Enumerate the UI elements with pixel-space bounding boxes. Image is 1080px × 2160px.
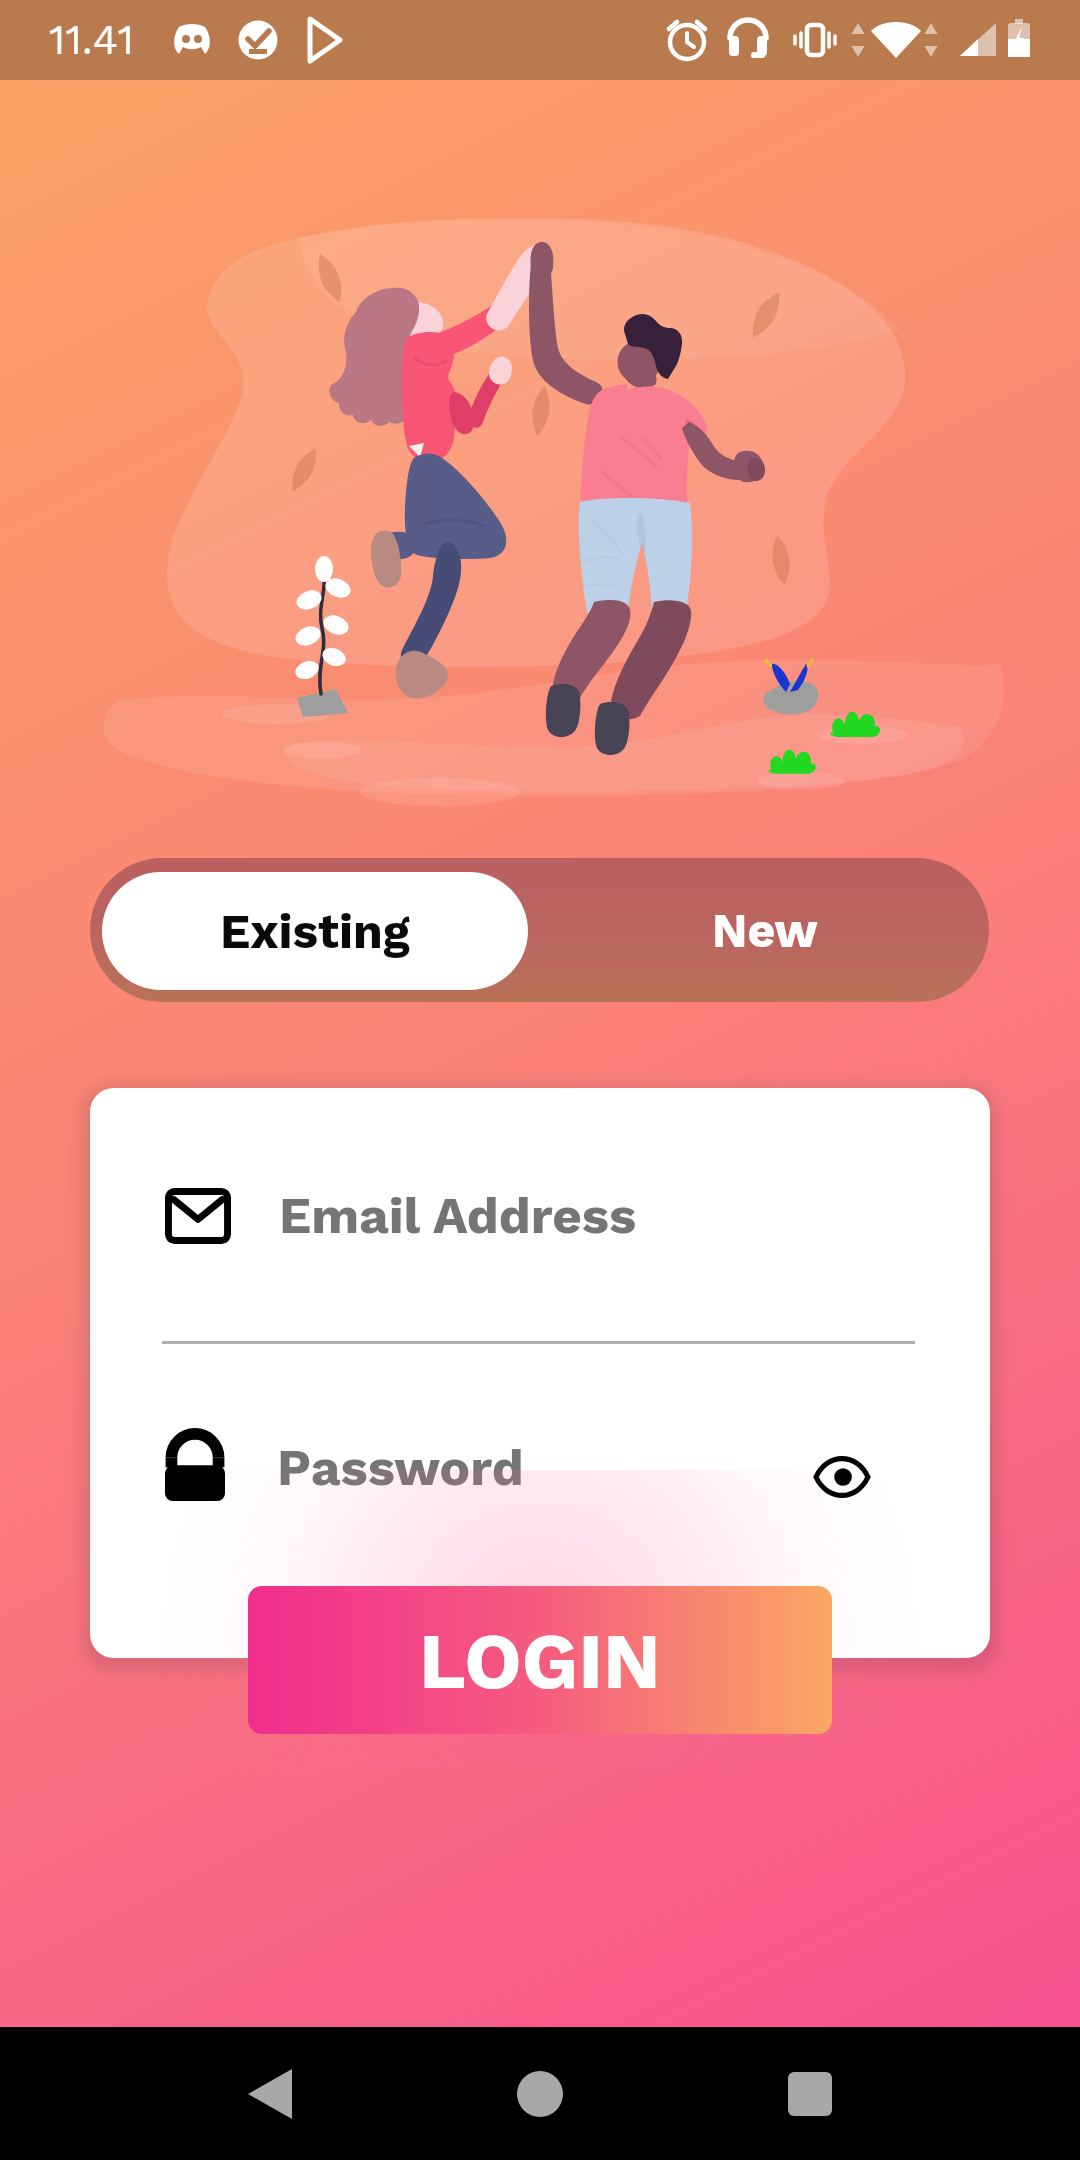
button[interactable]: Recents — [756, 2040, 864, 2148]
button[interactable]: Show password — [790, 1436, 894, 1518]
button[interactable]: Back — [216, 2040, 324, 2148]
staticText: Password — [277, 1438, 524, 1498]
button[interactable]: Password — [165, 1428, 960, 1508]
staticText: Existing — [220, 903, 410, 959]
staticText: 11.41 — [49, 15, 134, 64]
button[interactable]: Home — [486, 2040, 594, 2148]
staticText: LOGIN — [419, 1615, 661, 1706]
staticText: Email Address — [279, 1186, 637, 1246]
button[interactable]: LOGIN — [248, 1586, 832, 1734]
button[interactable]: Email Address — [165, 1176, 925, 1256]
button[interactable]: Existing — [102, 872, 528, 990]
staticText: New — [712, 902, 818, 958]
button[interactable]: New — [540, 858, 989, 1002]
